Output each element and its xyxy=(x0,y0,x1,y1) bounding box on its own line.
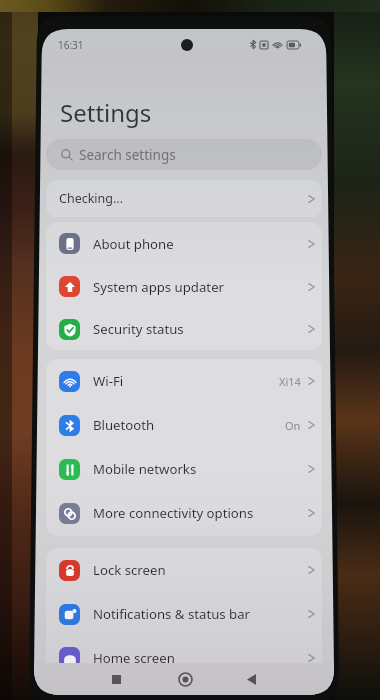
staticText: Lock screen xyxy=(93,561,166,579)
button[interactable]: Search settings xyxy=(46,139,322,170)
button[interactable]: Security status xyxy=(46,308,322,350)
staticText: Search settings xyxy=(79,146,176,164)
staticText: Checking... xyxy=(59,190,124,207)
staticText: Notifications & status bar xyxy=(93,605,251,623)
staticText: On xyxy=(285,418,301,433)
staticText: Settings xyxy=(60,96,152,129)
button[interactable]: Wi-Fi xyxy=(46,359,322,403)
button[interactable]: Mobile networks xyxy=(46,447,322,491)
button[interactable]: Home xyxy=(170,663,200,695)
staticText: System apps updater xyxy=(93,278,225,296)
button[interactable]: Notifications & status bar xyxy=(46,592,322,636)
staticText: Bluetooth xyxy=(93,416,155,434)
button[interactable]: System apps updater xyxy=(46,265,322,308)
button[interactable]: Checking... xyxy=(46,180,322,217)
staticText: Mobile networks xyxy=(93,460,197,478)
button[interactable]: Recents xyxy=(101,663,131,695)
staticText: Xi14 xyxy=(279,374,301,389)
staticText: 16:31 xyxy=(58,38,84,52)
staticText: About phone xyxy=(93,235,174,253)
button[interactable]: About phone xyxy=(46,222,322,265)
button[interactable]: Home screen xyxy=(46,636,322,679)
button[interactable]: Back xyxy=(236,663,266,695)
button[interactable]: Bluetooth xyxy=(46,403,322,447)
staticText: Home screen xyxy=(93,649,175,667)
staticText: Wi-Fi xyxy=(93,372,124,390)
staticText: More connectivity options xyxy=(93,504,254,522)
button[interactable]: Lock screen xyxy=(46,548,322,592)
button[interactable]: More connectivity options xyxy=(46,491,322,535)
staticText: Security status xyxy=(93,320,184,338)
